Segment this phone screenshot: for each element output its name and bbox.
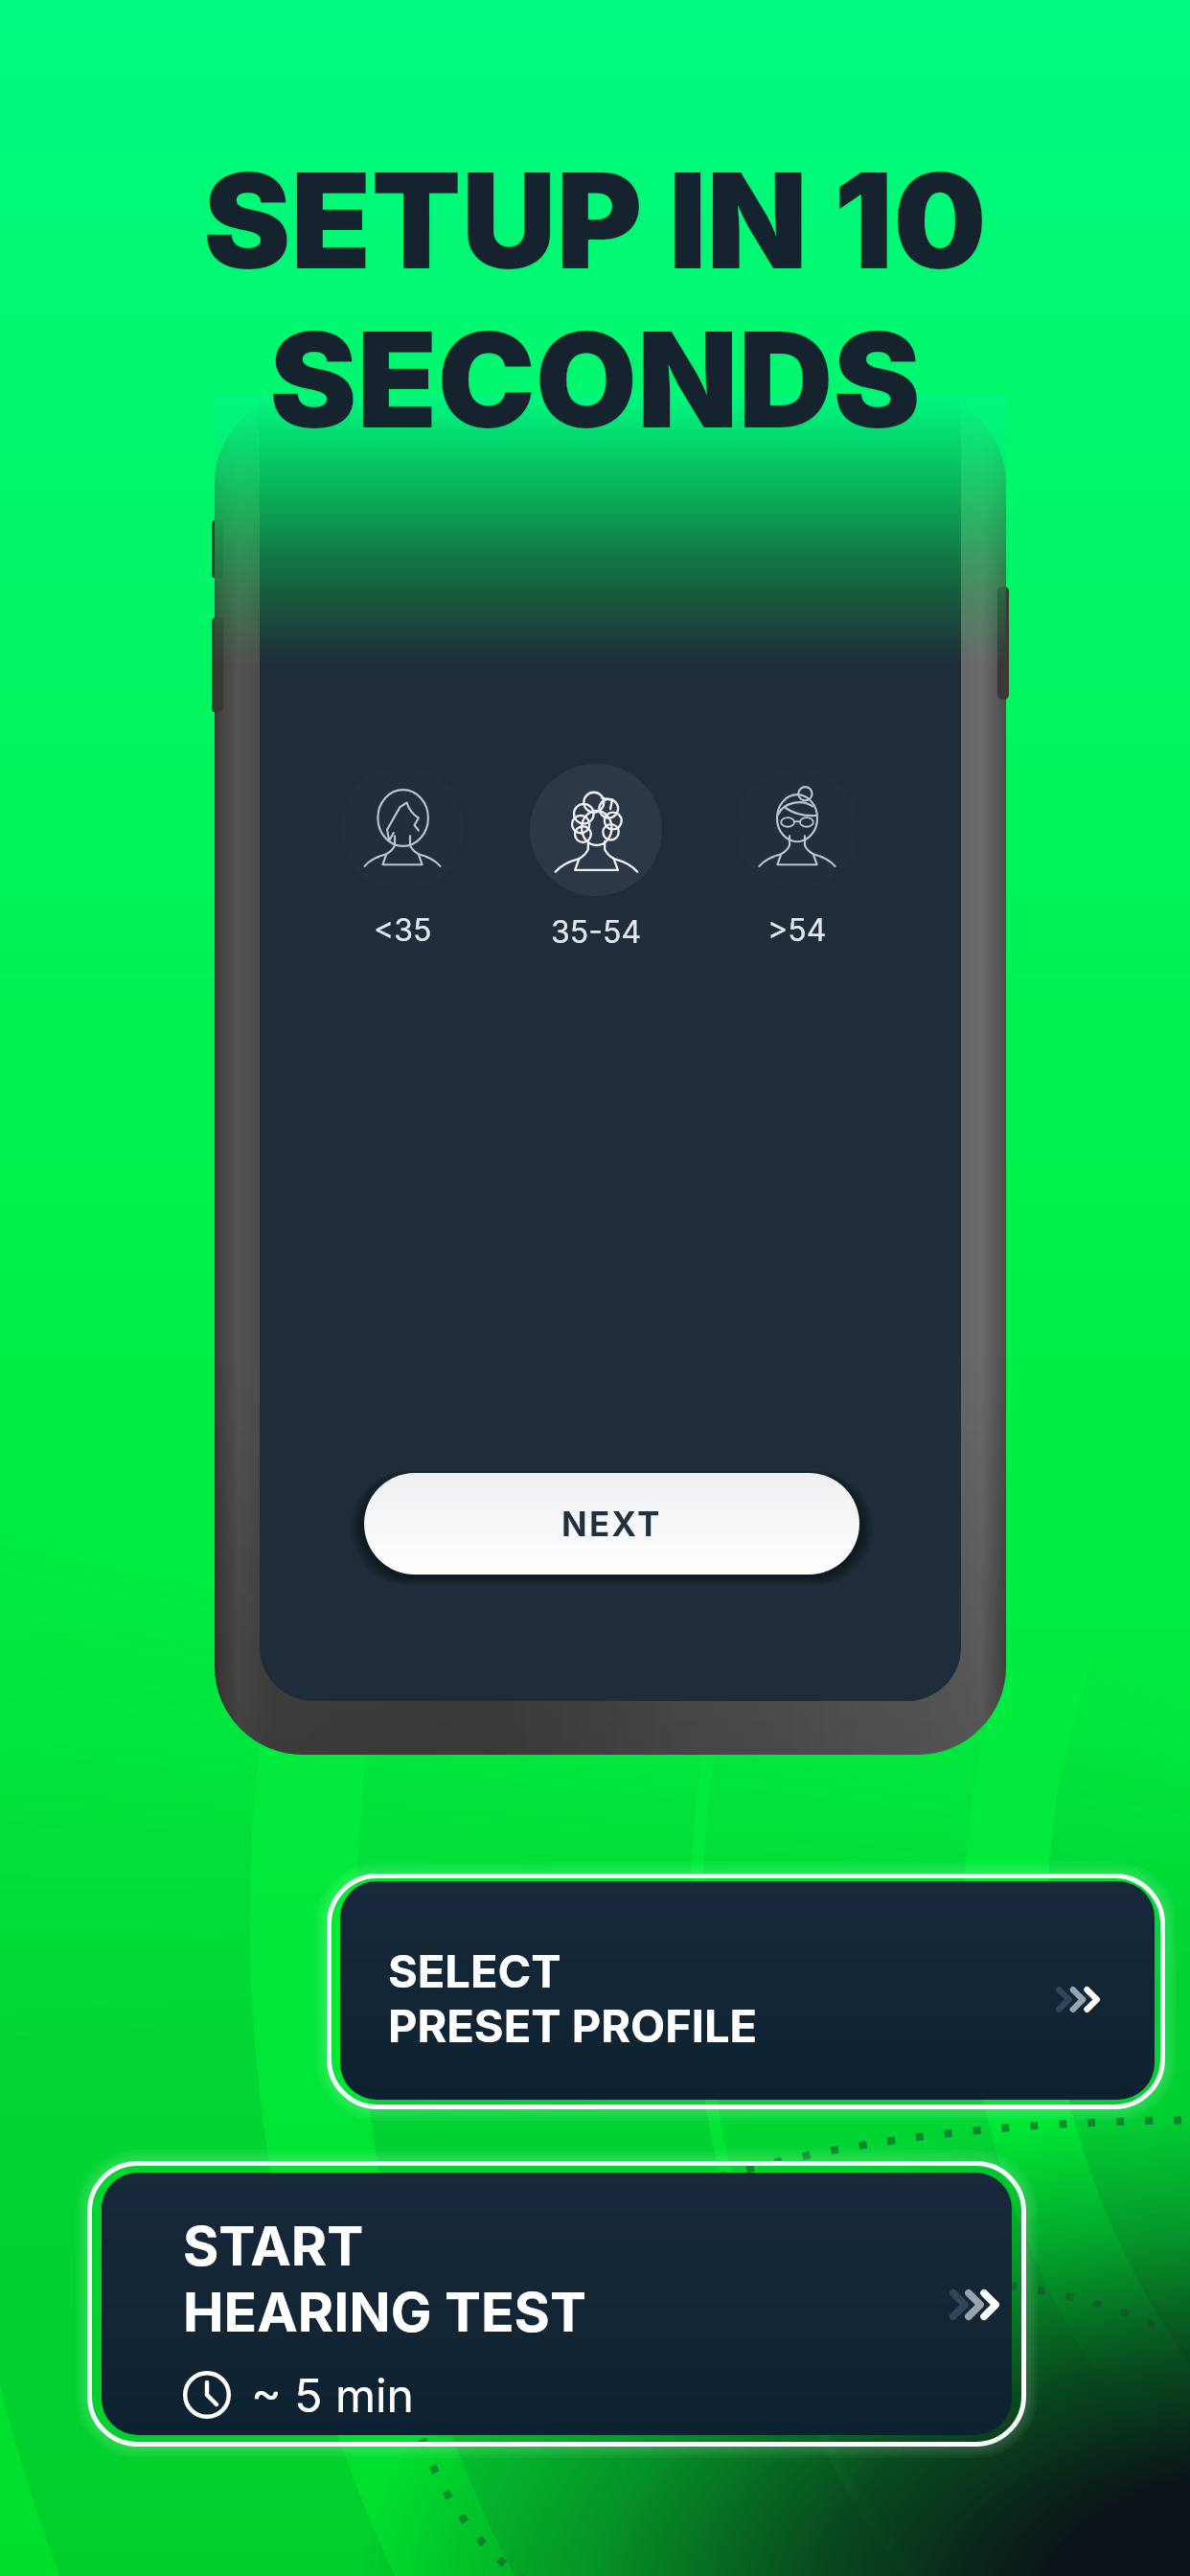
staticText: <35 (374, 911, 432, 949)
staticText: ~ 5 min (251, 2367, 414, 2423)
staticText: START (183, 2213, 364, 2279)
button[interactable]: NEXT (364, 1473, 859, 1575)
staticText: SELECT (388, 1943, 561, 1998)
staticText: 35-54 (551, 913, 642, 951)
button[interactable]: SELECT (327, 1874, 1165, 2109)
button[interactable]: START (87, 2161, 1026, 2447)
staticText: >54 (767, 911, 827, 949)
staticText: NEXT (561, 1504, 662, 1544)
staticText: SETUP IN 10 SECONDS (203, 141, 987, 459)
staticText: PRESET PROFILE (388, 1998, 758, 2053)
staticText: HEARING TEST (183, 2279, 586, 2345)
button[interactable]: Age group 35-54 (495, 764, 697, 987)
button[interactable]: Age group >54 (697, 767, 898, 980)
button[interactable]: Age group <35 (302, 767, 503, 980)
